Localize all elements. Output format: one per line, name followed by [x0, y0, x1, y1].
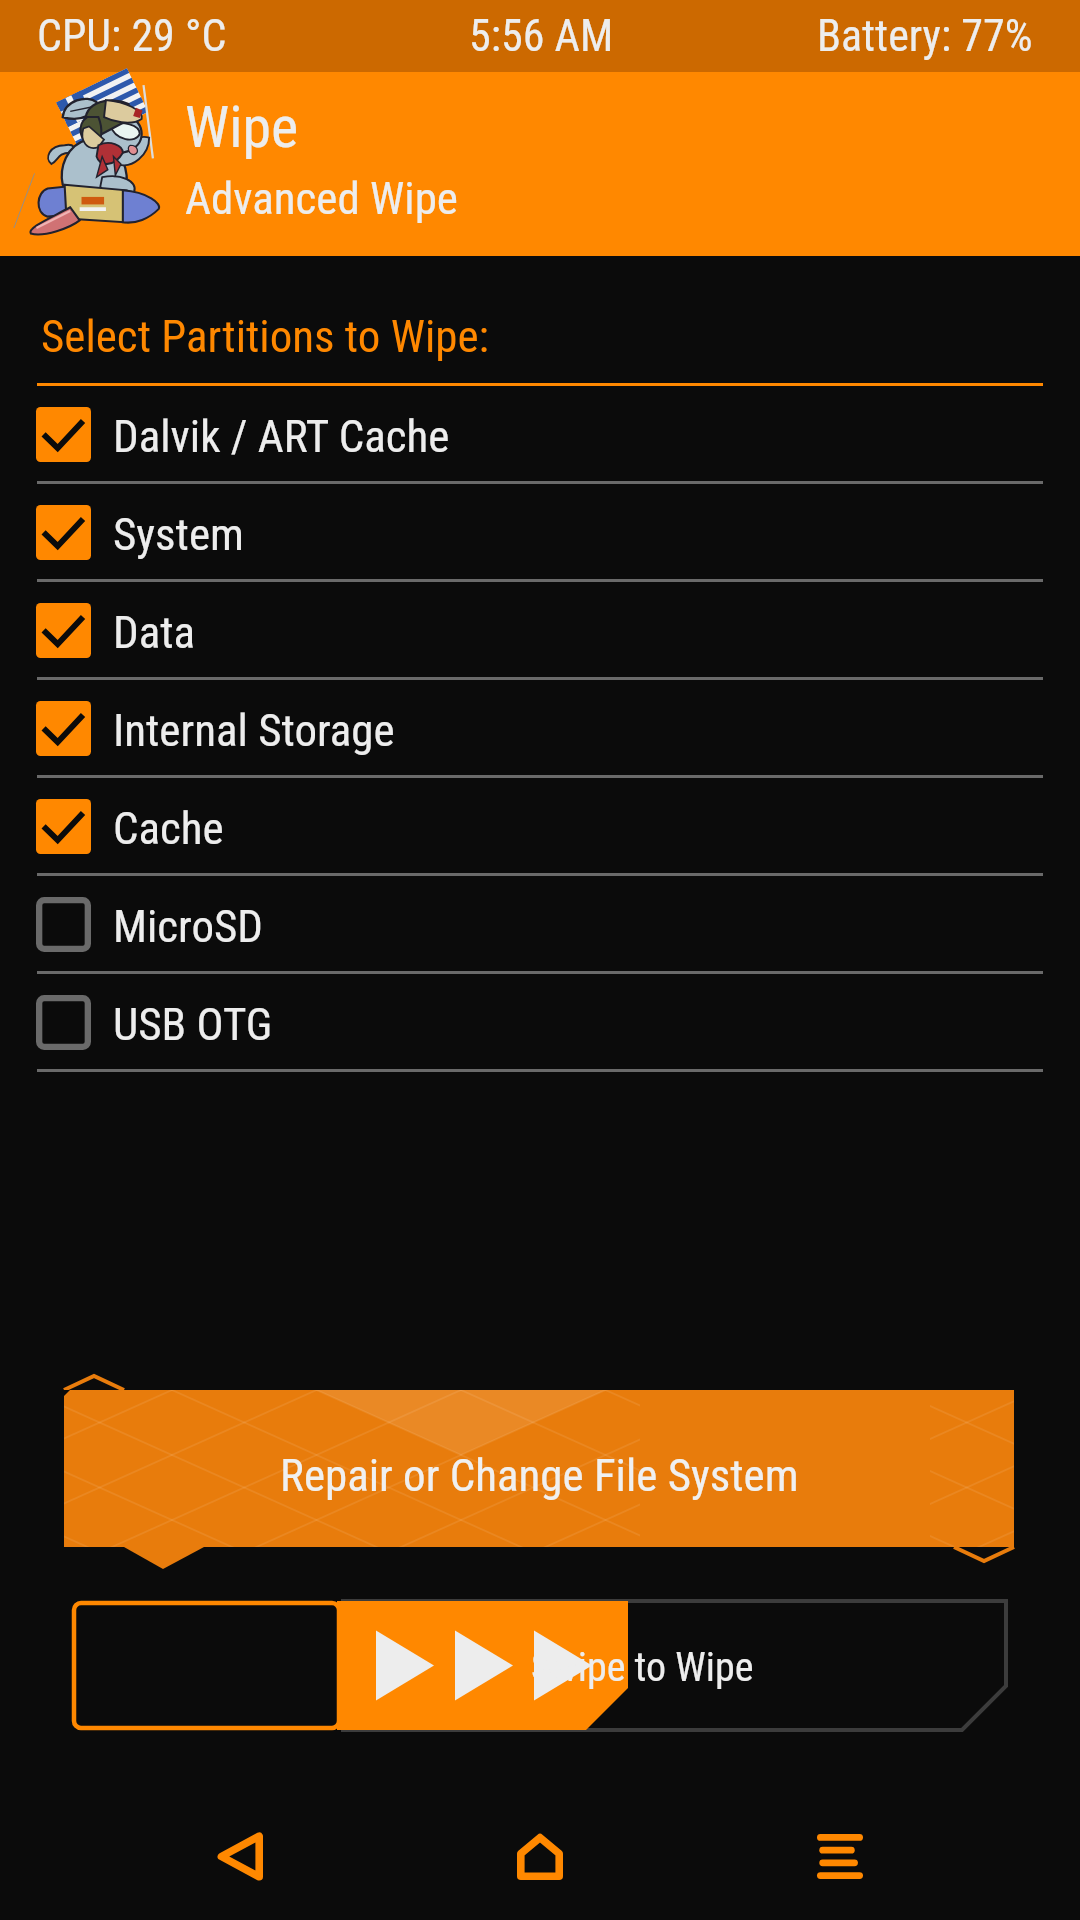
button[interactable]: Menu [750, 1792, 930, 1920]
staticText: Internal Storage [113, 704, 395, 757]
button[interactable]: Wipe [0, 72, 1080, 256]
staticText: Battery: 77% [817, 10, 1033, 62]
button[interactable]: Cache [0, 778, 1080, 876]
button[interactable]: Swipe to Wipe [0, 1595, 1080, 1735]
staticText: CPU: 29 °C [37, 10, 227, 62]
staticText: Dalvik / ART Cache [113, 410, 450, 463]
staticText: Data [113, 606, 196, 659]
button[interactable]: USB OTG [0, 974, 1080, 1072]
staticText: 5:56 AM [469, 10, 614, 62]
button[interactable]: MicroSD [0, 876, 1080, 974]
staticText: MicroSD [113, 900, 263, 953]
button[interactable]: Internal Storage [0, 680, 1080, 778]
button[interactable]: Data [0, 582, 1080, 680]
button[interactable]: System [0, 484, 1080, 582]
button[interactable]: Dalvik / ART Cache [0, 386, 1080, 484]
button[interactable]: Back [150, 1792, 330, 1920]
staticText: Cache [113, 802, 224, 855]
staticText: Select Partitions to Wipe: [41, 310, 490, 363]
staticText: System [113, 508, 244, 561]
staticText: Advanced Wipe [185, 172, 458, 225]
button[interactable]: Repair or Change File System [0, 1370, 1080, 1562]
staticText: Wipe [185, 93, 299, 161]
staticText: Repair or Change File System [280, 1449, 799, 1502]
button[interactable]: Home [450, 1792, 630, 1920]
staticText: USB OTG [113, 998, 273, 1051]
staticText: Swipe to Wipe [531, 1644, 754, 1691]
